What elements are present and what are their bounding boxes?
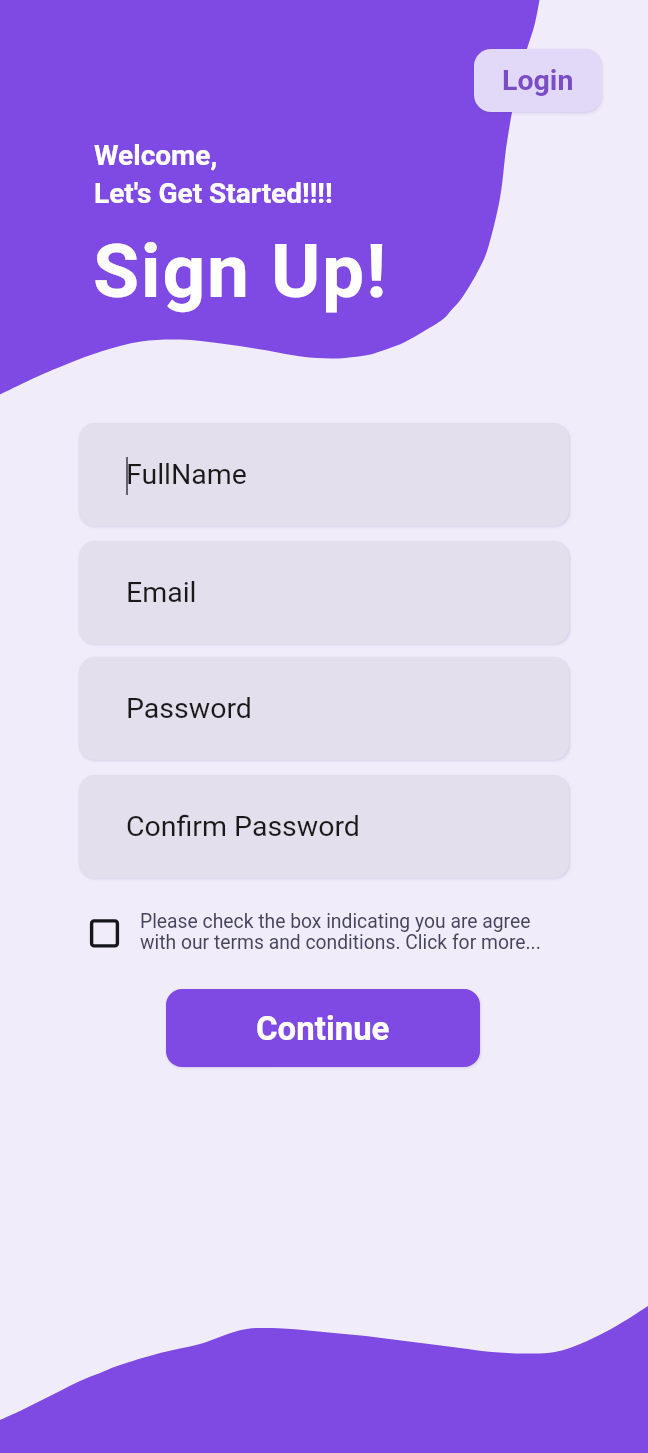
staticText: Sign Up!	[93, 227, 389, 315]
staticText: Please check the box indicating you are …	[140, 910, 531, 933]
button[interactable]: Agree to terms and conditions	[86, 906, 538, 962]
staticText: FullName	[126, 458, 247, 491]
staticText: Confirm Password	[126, 810, 360, 843]
staticText: Continue	[256, 1009, 390, 1048]
staticText: Password	[126, 692, 252, 725]
staticText: Welcome,	[94, 139, 218, 172]
button[interactable]: FullName	[79, 423, 569, 526]
staticText: Email	[126, 576, 197, 609]
button[interactable]: Email	[79, 541, 569, 644]
staticText: Let's Get Started!!!!	[94, 177, 333, 210]
staticText: with our terms and conditions. Click for…	[140, 931, 541, 954]
button[interactable]: Login	[474, 49, 602, 112]
button[interactable]: Password	[79, 657, 569, 760]
button[interactable]: Continue	[166, 989, 480, 1067]
staticText: Login	[502, 64, 574, 97]
button[interactable]: Confirm Password	[79, 775, 569, 878]
